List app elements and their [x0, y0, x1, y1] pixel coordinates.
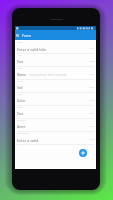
staticText: 0/20	[89, 125, 94, 128]
button[interactable]: Description	[17, 132, 94, 145]
staticText: Enter a valid title	[17, 47, 46, 52]
staticText: Field	[17, 93, 23, 96]
staticText: Dolor	[17, 99, 26, 103]
staticText: 0/20	[89, 60, 94, 63]
staticText: Counter	[17, 119, 26, 122]
staticText: Entry	[17, 106, 23, 109]
staticText: Description	[17, 132, 30, 135]
staticText: 0/20	[89, 99, 94, 102]
button[interactable]: Add	[79, 149, 87, 157]
button[interactable]: Input	[17, 80, 94, 93]
staticText: 0/20	[89, 112, 94, 115]
button[interactable]: Field	[17, 93, 94, 106]
staticText: Label	[17, 67, 23, 70]
staticText: 0/20	[89, 47, 94, 50]
button[interactable]: Navigation menu	[16, 34, 19, 37]
staticText: Text	[17, 60, 24, 64]
staticText: Text	[17, 112, 24, 116]
button[interactable]: Counter	[17, 119, 94, 132]
staticText: 0/20	[89, 73, 94, 76]
staticText: Title	[17, 41, 22, 44]
button[interactable]: Hint	[17, 54, 94, 67]
staticText: 0/20	[89, 138, 94, 141]
button[interactable]: Title	[17, 41, 94, 54]
staticText: Input	[17, 80, 23, 83]
staticText: Lorem ipsum dolor sit amet	[29, 73, 67, 77]
staticText: Name	[17, 73, 27, 77]
button[interactable]: Label	[17, 67, 94, 80]
staticText: Form	[22, 33, 32, 38]
staticText: Sed	[17, 86, 23, 90]
staticText: Amet	[17, 125, 26, 129]
staticText: Hint	[17, 54, 22, 57]
button[interactable]: Entry	[17, 106, 94, 119]
other: Status bar	[15, 26, 96, 30]
staticText: Enter a valid	[17, 138, 39, 143]
staticText: 0/20	[89, 86, 94, 89]
